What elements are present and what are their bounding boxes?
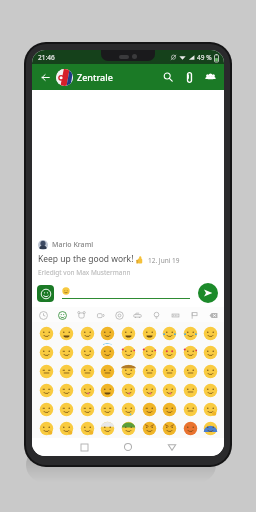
button[interactable]: Emoji 5-3: [98, 419, 116, 437]
button[interactable]: Emoji 2-5: [140, 362, 158, 380]
button[interactable]: Emoji category 4: [93, 308, 107, 322]
button[interactable]: Group avatar: [56, 69, 73, 86]
button[interactable]: Emoji 4-7: [181, 400, 199, 418]
button[interactable]: Emoji category 7: [149, 308, 163, 322]
button[interactable]: Emoji category 2: [55, 308, 69, 322]
button[interactable]: Emoji 1-8: [201, 343, 219, 361]
button[interactable]: Back: [163, 438, 181, 456]
button[interactable]: Emoji 4-4: [119, 400, 137, 418]
button[interactable]: Emoji category 6: [130, 308, 144, 322]
button[interactable]: Emoji 4-1: [57, 400, 75, 418]
button[interactable]: Emoji 0-3: [98, 324, 116, 342]
staticText: Erledigt von Max Mustermann: [38, 268, 131, 277]
button[interactable]: Emoji: [37, 285, 54, 302]
button[interactable]: Emoji 5-7: [181, 419, 199, 437]
button[interactable]: Emoji 1-3: [98, 343, 116, 361]
button[interactable]: Emoji category 3: [74, 308, 88, 322]
button[interactable]: Back: [37, 69, 53, 85]
button[interactable]: Emoji 0-4: [119, 324, 137, 342]
button[interactable]: Emoji 0-5: [140, 324, 158, 342]
button[interactable]: Emoji 3-0: [37, 381, 55, 399]
button[interactable]: Emoji 2-3: [98, 362, 116, 380]
button[interactable]: Emoji 5-6: [160, 419, 178, 437]
button[interactable]: Home: [119, 438, 137, 456]
button[interactable]: Emoji 0-2: [78, 324, 96, 342]
button[interactable]: Emoji 4-0: [37, 400, 55, 418]
button[interactable]: Emoji 5-0: [37, 419, 55, 437]
button[interactable]: Emoji 2-1: [57, 362, 75, 380]
button[interactable]: Members: [201, 68, 219, 86]
button[interactable]: Emoji 2-2: [78, 362, 96, 380]
button[interactable]: Emoji 2-8: [201, 362, 219, 380]
button[interactable]: Emoji 4-8: [201, 400, 219, 418]
button[interactable]: Emoji 1-2: [78, 343, 96, 361]
button[interactable]: Emoji category 10: [206, 308, 220, 322]
staticText: Zentrale: [77, 71, 113, 83]
button[interactable]: Emoji 5-5: [140, 419, 158, 437]
button[interactable]: Emoji 3-6: [160, 381, 178, 399]
button[interactable]: Emoji 1-0: [37, 343, 55, 361]
button[interactable]: Emoji 3-5: [140, 381, 158, 399]
button[interactable]: Emoji category 1: [36, 308, 50, 322]
button[interactable]: Emoji 3-8: [201, 381, 219, 399]
button[interactable]: Send: [198, 283, 218, 303]
button[interactable]: Emoji 3-2: [78, 381, 96, 399]
button[interactable]: Emoji 2-7: [181, 362, 199, 380]
button[interactable]: Emoji 0-1: [57, 324, 75, 342]
button[interactable]: Emoji category 8: [168, 308, 182, 322]
button[interactable]: Emoji 0-7: [181, 324, 199, 342]
button[interactable]: Emoji 2-0: [37, 362, 55, 380]
button[interactable]: Emoji 2-4: [119, 362, 137, 380]
button[interactable]: Search: [159, 68, 177, 86]
button[interactable]: Emoji 4-6: [160, 400, 178, 418]
button[interactable]: Emoji 4-3: [98, 400, 116, 418]
button[interactable]: Emoji 1-1: [57, 343, 75, 361]
staticText: 21:46: [38, 53, 55, 62]
button[interactable]: Emoji category 5: [112, 308, 126, 322]
button[interactable]: Emoji 5-4: [119, 419, 137, 437]
button[interactable]: Emoji 0-0: [37, 324, 55, 342]
button[interactable]: Emoji 4-2: [78, 400, 96, 418]
button[interactable]: Emoji 1-5: [140, 343, 158, 361]
staticText: Mario Kraml: [52, 240, 94, 250]
button[interactable]: Emoji 2-6: [160, 362, 178, 380]
button[interactable]: Emoji 0-6: [160, 324, 178, 342]
staticText: Keep up the good work!: [38, 253, 134, 265]
button[interactable]: Emoji 4-5: [140, 400, 158, 418]
button[interactable]: Emoji 0-8: [201, 324, 219, 342]
button[interactable]: Emoji category 9: [187, 308, 201, 322]
button[interactable]: Emoji 1-4: [119, 343, 137, 361]
button[interactable]: Recent apps: [75, 438, 93, 456]
button[interactable]: Emoji 5-2: [78, 419, 96, 437]
staticText: 49 %: [197, 53, 212, 62]
button[interactable]: Emoji 5-8: [201, 419, 219, 437]
button[interactable]: Attach: [180, 68, 198, 86]
button[interactable]: Emoji 3-3: [98, 381, 116, 399]
button[interactable]: Emoji 3-1: [57, 381, 75, 399]
button[interactable]: Emoji 3-7: [181, 381, 199, 399]
button[interactable]: Emoji 1-6: [160, 343, 178, 361]
staticText: 12. Juni 19: [148, 256, 180, 265]
button[interactable]: Emoji 1-7: [181, 343, 199, 361]
button[interactable]: Emoji 5-1: [57, 419, 75, 437]
button[interactable]: Emoji 3-4: [119, 381, 137, 399]
